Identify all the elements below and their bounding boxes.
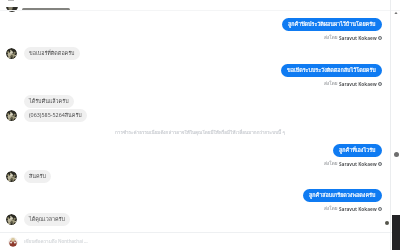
button[interactable]: ลูกค้าสอบเกรียดวงพอดงครับ <box>303 189 382 202</box>
staticText: Saravut Kokaew <box>339 206 377 212</box>
staticText: Saravut Kokaew <box>339 81 377 87</box>
staticText: ลูกค้าปิดประวัติผ่อนผาไว้บ้านโดยครับ <box>288 20 376 29</box>
button[interactable]: (063)585-5264สินครับ <box>24 109 87 122</box>
button[interactable]: ได้รับคืนแล้วครับ <box>24 95 74 108</box>
staticText: ขอเบอร์ที่ติดต่อครับ <box>29 49 75 58</box>
other: Scroll up <box>394 11 398 15</box>
staticText: ได้คุณเวลาครับ <box>29 215 65 224</box>
staticText: ลูกค้าสอบเกรียดวงพอดงครับ <box>309 191 376 200</box>
staticText: ขอเปิดระบบระวังติดต่อกลับไว้โดยครับ <box>287 66 376 75</box>
staticText: การชำระค่าธรรมเนียมดังกล่าวอาจให้ในคุณโด… <box>115 129 285 136</box>
button[interactable]: ขอเบอร์ที่ติดต่อครับ <box>24 47 80 60</box>
staticText: ส่งโดย <box>324 160 339 167</box>
button[interactable]: ลูกค้าปิดประวัติผ่อนผาไว้บ้านโดยครับ <box>282 18 382 31</box>
staticText: ส่งโดย <box>324 80 339 87</box>
button[interactable]: ลูกค้าที่เองไวรับ <box>333 144 382 157</box>
button[interactable]: ได้คุณเวลาครับ <box>24 213 70 226</box>
button[interactable]: ขอเปิดระบบระวังติดต่อกลับไว้โดยครับ <box>281 64 382 77</box>
button[interactable]: สินครับ <box>24 170 51 183</box>
staticText: สินครับ <box>29 172 46 181</box>
staticText: Saravut Kokaew <box>339 35 377 41</box>
staticText: Saravut Kokaew <box>339 161 377 167</box>
staticText: ส่งโดย <box>324 205 339 212</box>
button[interactable]: เขียนข้อความถึง Nonthachai … <box>0 233 400 250</box>
staticText: ลูกค้าที่เองไวรับ <box>339 146 376 155</box>
staticText: (063)585-5264สินครับ <box>29 111 82 120</box>
staticText: ส่งโดย <box>324 34 339 41</box>
staticText: ได้รับคืนแล้วครับ <box>29 97 69 106</box>
staticText: เขียนข้อความถึง Nonthachai … <box>24 238 88 245</box>
